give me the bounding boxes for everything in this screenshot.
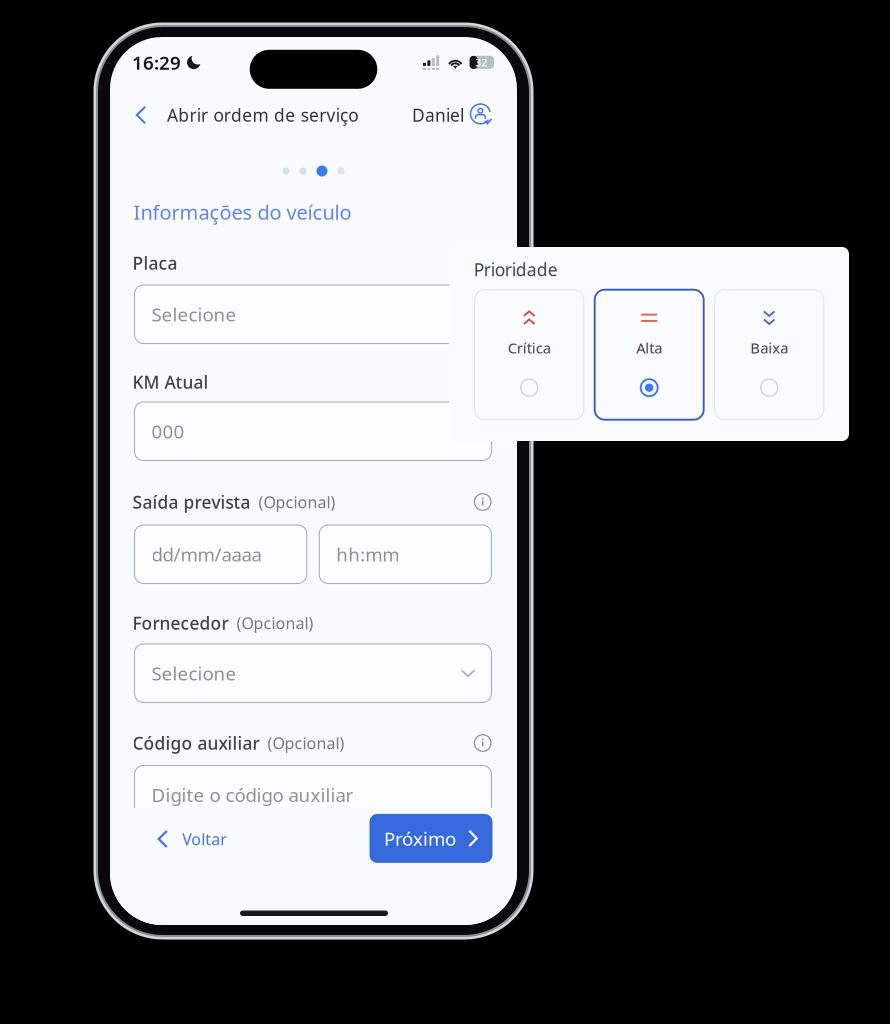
staticText: (Opcional): [228, 612, 313, 634]
staticText: Código auxiliar: [132, 731, 259, 754]
button[interactable]: Alta: [595, 290, 704, 420]
staticText: Daniel: [412, 103, 464, 126]
staticText: 16:29: [132, 50, 181, 75]
button[interactable]: Etapa 1: [282, 167, 289, 174]
staticText: Crítica: [508, 338, 551, 357]
button[interactable]: dd/mm/aaaa: [135, 525, 307, 583]
staticText: Abrir ordem de serviço: [167, 103, 358, 126]
button[interactable]: Etapa 4: [337, 167, 344, 174]
button[interactable]: Baixa: [715, 290, 824, 420]
button[interactable]: Etapa 3, atual: [316, 165, 327, 176]
staticText: KM Atual: [132, 370, 208, 393]
staticText: Saída prevista: [132, 490, 250, 513]
staticText: 32: [475, 55, 487, 69]
button[interactable]: Selecione: [134, 644, 491, 702]
staticText: Informações do veículo: [133, 199, 351, 225]
button[interactable]: Mais informações sobre Saída prevista: [474, 493, 491, 511]
staticText: Placa: [132, 251, 177, 274]
staticText: Alta: [636, 338, 662, 357]
staticText: Selecione: [151, 302, 236, 327]
button[interactable]: Daniel: [412, 100, 493, 130]
staticText: Próximo: [384, 826, 456, 851]
button[interactable]: Selecione: [134, 285, 491, 343]
staticText: Baixa: [750, 338, 788, 357]
staticText: (Opcional): [259, 732, 344, 754]
staticText: (Opcional): [250, 491, 335, 513]
staticText: hh:mm: [336, 542, 399, 567]
staticText: 000: [151, 419, 184, 444]
button[interactable]: Crítica: [475, 290, 584, 420]
staticText: Digite o código auxiliar: [151, 782, 353, 807]
button[interactable]: hh:mm: [319, 525, 491, 583]
button[interactable]: Mais informações sobre Código auxiliar: [474, 734, 491, 752]
staticText: Prioridade: [474, 258, 558, 281]
button[interactable]: Voltar: [126, 817, 241, 861]
staticText: Fornecedor: [132, 611, 228, 634]
button[interactable]: Digite o código auxiliar: [134, 765, 491, 824]
staticText: Selecione: [151, 661, 236, 686]
staticText: dd/mm/aaaa: [152, 542, 262, 567]
button[interactable]: Próximo: [369, 814, 492, 863]
staticText: Voltar: [182, 828, 227, 850]
button[interactable]: 000: [134, 402, 491, 460]
button[interactable]: Etapa 2: [299, 167, 306, 174]
button[interactable]: Voltar: [128, 100, 154, 130]
